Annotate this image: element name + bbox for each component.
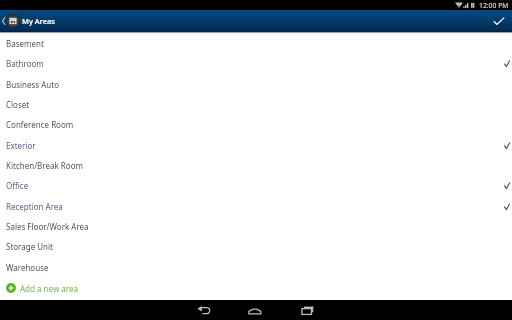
- staticText: Warehouse: [6, 262, 49, 273]
- button[interactable]: Basement: [0, 33, 512, 53]
- staticText: My Areas: [22, 16, 55, 26]
- button[interactable]: Warehouse: [0, 257, 512, 277]
- button[interactable]: Reception Area: [0, 196, 512, 216]
- button[interactable]: Exterior: [0, 135, 512, 155]
- button[interactable]: Kitchen/Break Room: [0, 155, 512, 175]
- staticText: Business Auto: [6, 79, 60, 90]
- staticText: Bathroom: [6, 58, 44, 69]
- staticText: Sales Floor/Work Area: [6, 221, 89, 232]
- staticText: Storage Unit: [6, 241, 54, 252]
- button[interactable]: Storage Unit: [0, 236, 512, 256]
- staticText: Reception Area: [6, 201, 63, 212]
- button[interactable]: Navigate up: [0, 14, 20, 28]
- staticText: Conference Room: [6, 119, 74, 130]
- button[interactable]: Add a new area: [0, 278, 512, 298]
- staticText: Office: [6, 180, 29, 191]
- staticText: Kitchen/Break Room: [6, 160, 83, 171]
- button[interactable]: Done: [485, 10, 512, 32]
- staticText: Add a new area: [20, 283, 78, 294]
- button[interactable]: Conference Room: [0, 114, 512, 134]
- button[interactable]: Sales Floor/Work Area: [0, 216, 512, 236]
- button[interactable]: Recent apps: [282, 300, 334, 320]
- button[interactable]: Closet: [0, 94, 512, 114]
- button[interactable]: Home: [230, 300, 282, 320]
- button[interactable]: Back: [178, 300, 230, 320]
- button[interactable]: Office: [0, 175, 512, 195]
- staticText: 12:00 PM: [479, 1, 509, 10]
- button[interactable]: Business Auto: [0, 74, 512, 94]
- staticText: Closet: [6, 99, 30, 110]
- staticText: Exterior: [6, 140, 36, 151]
- staticText: Basement: [6, 38, 44, 49]
- button[interactable]: Bathroom: [0, 53, 512, 73]
